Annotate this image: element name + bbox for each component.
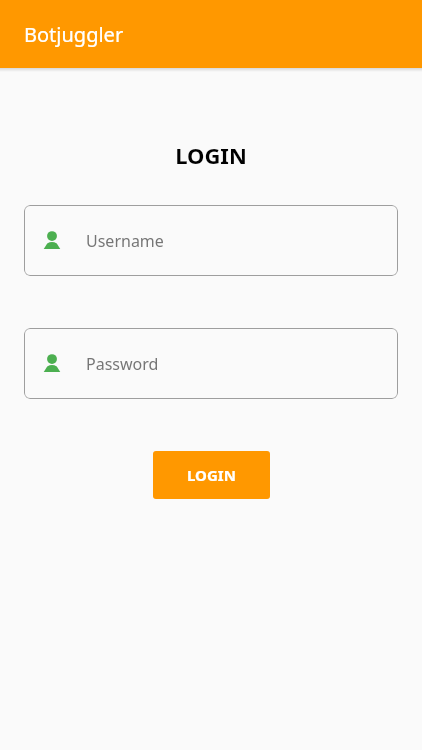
other: Person: [40, 229, 64, 253]
staticText: Password: [86, 353, 159, 375]
other: Person: [40, 352, 64, 376]
button[interactable]: Person: [24, 205, 398, 276]
staticText: LOGIN: [187, 465, 236, 485]
button[interactable]: LOGIN: [153, 451, 270, 499]
button[interactable]: Person: [24, 328, 398, 399]
staticText: Botjuggler: [24, 21, 124, 48]
staticText: LOGIN: [0, 140, 422, 170]
staticText: Username: [86, 230, 164, 252]
